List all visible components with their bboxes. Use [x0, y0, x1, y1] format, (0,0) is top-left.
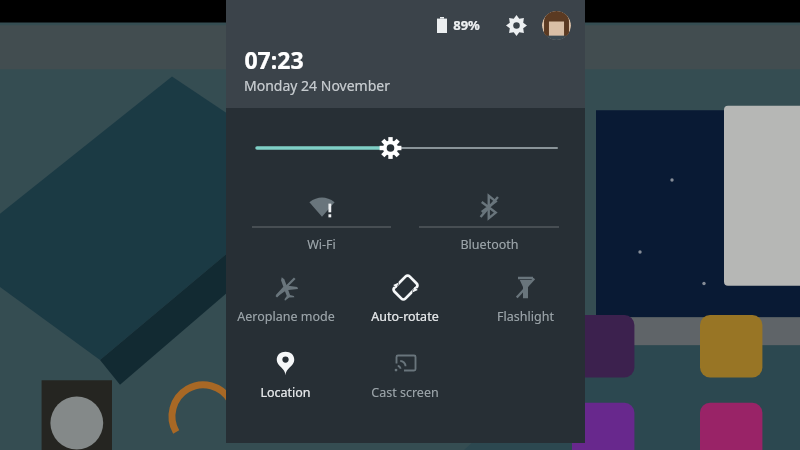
staticText: Aeroplane mode	[237, 308, 335, 325]
button[interactable]: User profile	[542, 11, 571, 40]
staticText: Flashlight	[497, 308, 554, 325]
button[interactable]: Bluetooth	[405, 187, 573, 253]
button[interactable]: Wi-Fi	[238, 187, 405, 253]
button[interactable]: Auto-rotate	[345, 275, 465, 325]
button[interactable]: Flashlight	[465, 275, 585, 325]
button[interactable]: Settings	[500, 9, 532, 41]
button[interactable]: Location	[226, 351, 345, 401]
staticText: Bluetooth	[460, 236, 519, 253]
staticText: Monday 24 November	[244, 76, 390, 95]
staticText: Wi-Fi	[307, 236, 336, 253]
staticText: 07:23	[244, 44, 304, 75]
button[interactable]: Brightness	[226, 135, 585, 161]
button[interactable]: Cast screen	[345, 351, 465, 401]
staticText: Auto-rotate	[371, 308, 439, 325]
button[interactable]: Aeroplane mode	[226, 275, 345, 325]
staticText: Cast screen	[371, 384, 439, 401]
staticText: 89%	[453, 16, 480, 34]
staticText: Location	[260, 384, 311, 401]
